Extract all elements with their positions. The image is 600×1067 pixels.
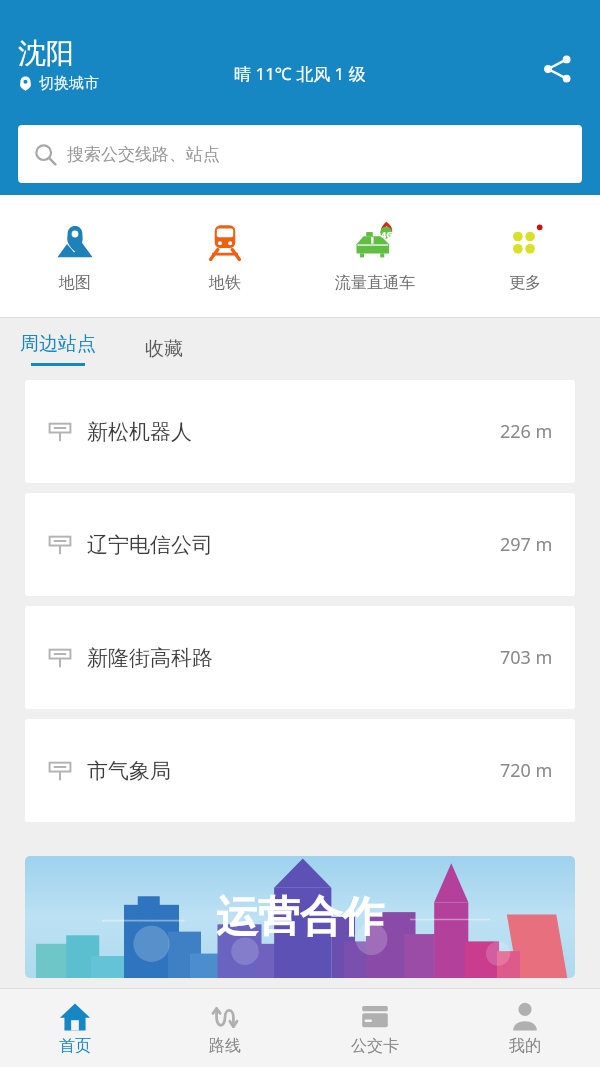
staticText: 运营合作 <box>216 891 384 944</box>
staticText: 地图 <box>59 273 91 293</box>
staticText: 我的 <box>509 1036 541 1056</box>
staticText: 297 m <box>500 532 553 557</box>
staticText: 地铁 <box>209 273 241 293</box>
staticText: 市气象局 <box>87 758 171 784</box>
button[interactable]: 地图 <box>0 195 150 317</box>
staticText: 周边站点 <box>20 332 96 356</box>
staticText: 切换城市 <box>39 74 99 93</box>
staticText: 流量直通车 <box>335 273 415 293</box>
staticText: 更多 <box>509 273 541 293</box>
button[interactable]: 首页 <box>0 989 150 1067</box>
button[interactable]: 地铁 <box>150 195 300 317</box>
button[interactable]: 我的 <box>450 989 600 1067</box>
staticText: 收藏 <box>145 337 183 361</box>
button[interactable]: 新松机器人 <box>25 380 575 483</box>
button[interactable]: Share <box>534 46 580 92</box>
staticText: 辽宁电信公司 <box>87 532 213 558</box>
staticText: 路线 <box>209 1036 241 1056</box>
staticText: 720 m <box>500 758 553 783</box>
staticText: 沈阳 <box>18 36 74 71</box>
button[interactable]: 新隆街高科路 <box>25 606 575 709</box>
staticText: 226 m <box>500 419 553 444</box>
button[interactable]: 周边站点 <box>18 332 98 366</box>
button[interactable]: 搜索公交线路、站点 <box>18 125 582 183</box>
button[interactable]: 切换城市 <box>18 74 99 93</box>
button[interactable]: 辽宁电信公司 <box>25 493 575 596</box>
staticText: 新隆街高科路 <box>87 645 213 671</box>
button[interactable]: 路线 <box>150 989 300 1067</box>
button[interactable]: 运营合作 <box>25 856 575 978</box>
button[interactable]: 4G <box>300 195 450 317</box>
button[interactable]: 更多 <box>450 195 600 317</box>
staticText: 首页 <box>59 1036 91 1056</box>
button[interactable]: 市气象局 <box>25 719 575 822</box>
staticText: 晴 11℃ 北风 1 级 <box>234 62 366 85</box>
staticText: 703 m <box>500 645 553 670</box>
staticText: 新松机器人 <box>87 419 192 445</box>
button[interactable]: 公交卡 <box>300 989 450 1067</box>
staticText: 搜索公交线路、站点 <box>67 144 220 165</box>
button[interactable]: 收藏 <box>142 332 186 366</box>
staticText: 公交卡 <box>351 1036 399 1056</box>
staticText: 4G <box>381 228 393 240</box>
